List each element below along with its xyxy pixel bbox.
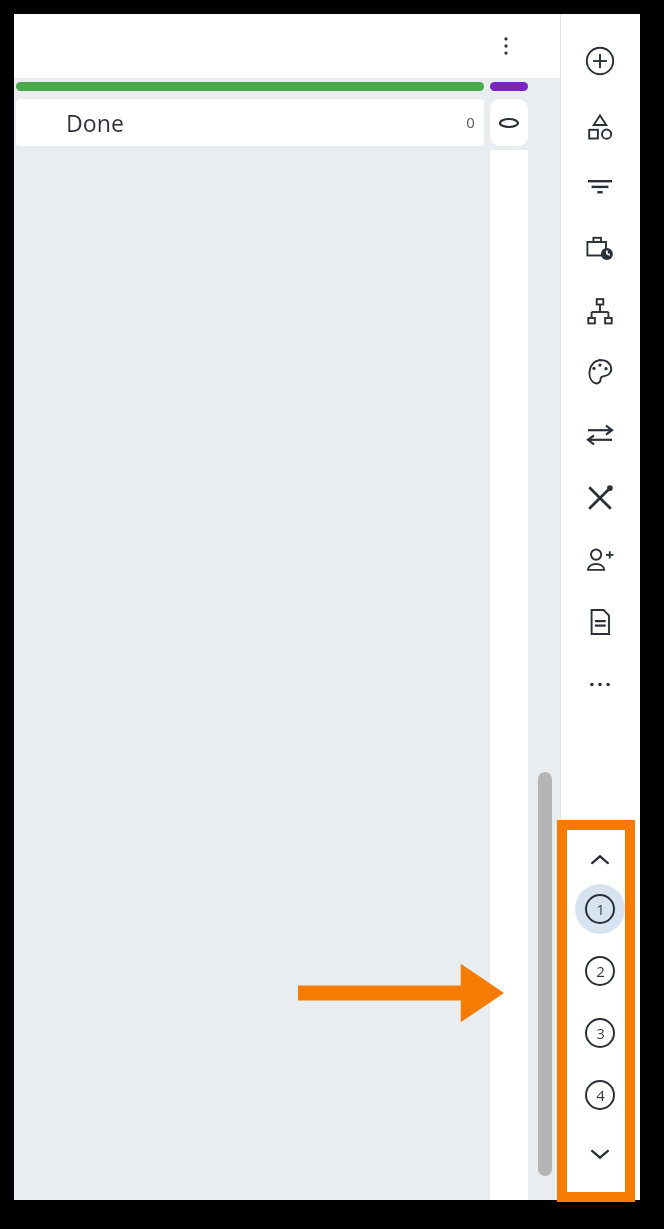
staticText: 2	[596, 961, 605, 981]
button[interactable]: Add member	[577, 537, 623, 583]
button[interactable]: Shapes	[577, 105, 623, 151]
staticText: 4	[596, 1085, 605, 1105]
button[interactable]: Design	[577, 475, 623, 521]
button[interactable]: 3	[575, 1008, 625, 1058]
button[interactable]: More tools	[577, 661, 623, 707]
button[interactable]: Collapsed list	[490, 99, 528, 146]
button[interactable]: Previous page	[578, 838, 622, 882]
button[interactable]: More options	[484, 24, 528, 68]
button[interactable]: Document	[577, 599, 623, 645]
staticText: 3	[596, 1023, 605, 1043]
button[interactable]: 4	[575, 1070, 625, 1120]
button[interactable]: Timeline	[577, 225, 623, 271]
staticText: 0	[466, 112, 475, 132]
staticText: Done	[66, 107, 124, 138]
button[interactable]: Theme	[577, 349, 623, 395]
button[interactable]: Swap	[577, 412, 623, 458]
button[interactable]: Next page	[578, 1132, 622, 1176]
button[interactable]: Add	[577, 38, 623, 84]
button[interactable]: 1	[575, 884, 625, 934]
button[interactable]: Done	[16, 99, 484, 146]
button[interactable]: 2	[575, 946, 625, 996]
staticText: 1	[596, 899, 605, 919]
button[interactable]: Filter	[577, 163, 623, 209]
button[interactable]: Hierarchy	[577, 289, 623, 335]
